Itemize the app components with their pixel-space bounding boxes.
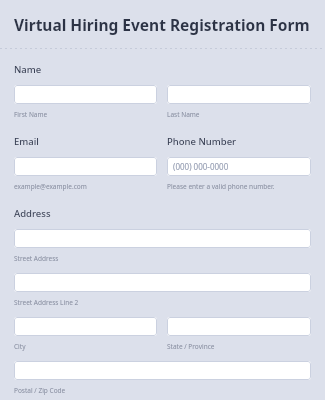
button[interactable] xyxy=(14,273,311,292)
staticText: Street Address xyxy=(14,254,59,263)
staticText: Address xyxy=(14,207,51,220)
staticText: City xyxy=(14,342,26,351)
staticText: Phone Number xyxy=(167,135,237,148)
staticText: Last Name xyxy=(167,110,200,119)
staticText: Street Address Line 2 xyxy=(14,298,79,307)
button[interactable] xyxy=(14,361,311,380)
button[interactable] xyxy=(14,229,311,248)
staticText: Name xyxy=(14,63,42,76)
staticText: Postal / Zip Code xyxy=(14,386,66,395)
staticText: State / Province xyxy=(167,342,215,351)
staticText: Please enter a valid phone number. xyxy=(167,182,275,191)
staticText: Email xyxy=(14,135,39,148)
button[interactable] xyxy=(167,85,311,104)
button[interactable] xyxy=(14,317,157,336)
button[interactable] xyxy=(14,85,157,104)
button[interactable]: (000) 000-0000 xyxy=(167,157,311,176)
staticText: (000) 000-0000 xyxy=(173,161,229,172)
staticText: First Name xyxy=(14,110,48,119)
staticText: Virtual Hiring Event Registration Form xyxy=(14,14,310,35)
button[interactable] xyxy=(167,317,311,336)
staticText: example@example.com xyxy=(14,182,87,191)
button[interactable] xyxy=(14,157,157,176)
